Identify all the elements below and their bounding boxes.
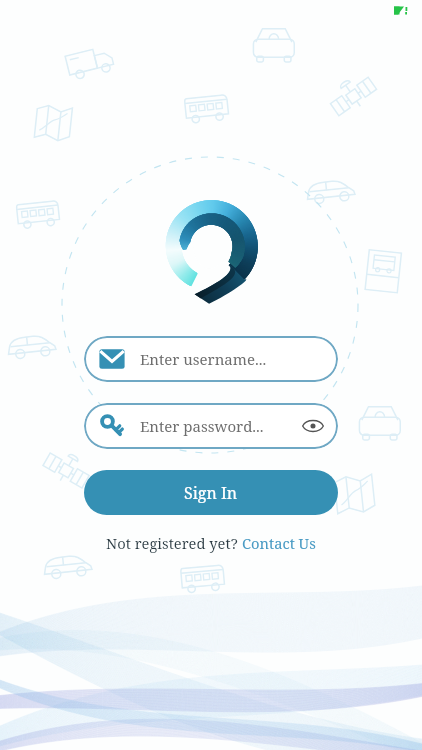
- staticText: Not registered yet?: [106, 533, 242, 553]
- button[interactable]: Contact Us: [242, 533, 316, 553]
- button[interactable]: Show password: [298, 411, 328, 441]
- staticText: Enter password...: [140, 416, 264, 436]
- button[interactable]: Enter password...: [84, 403, 338, 449]
- staticText: Contact Us: [242, 533, 316, 553]
- staticText: Enter username...: [140, 349, 267, 369]
- staticText: Sign In: [184, 482, 238, 504]
- button[interactable]: Sign In: [84, 470, 338, 515]
- button[interactable]: Enter username...: [84, 336, 338, 382]
